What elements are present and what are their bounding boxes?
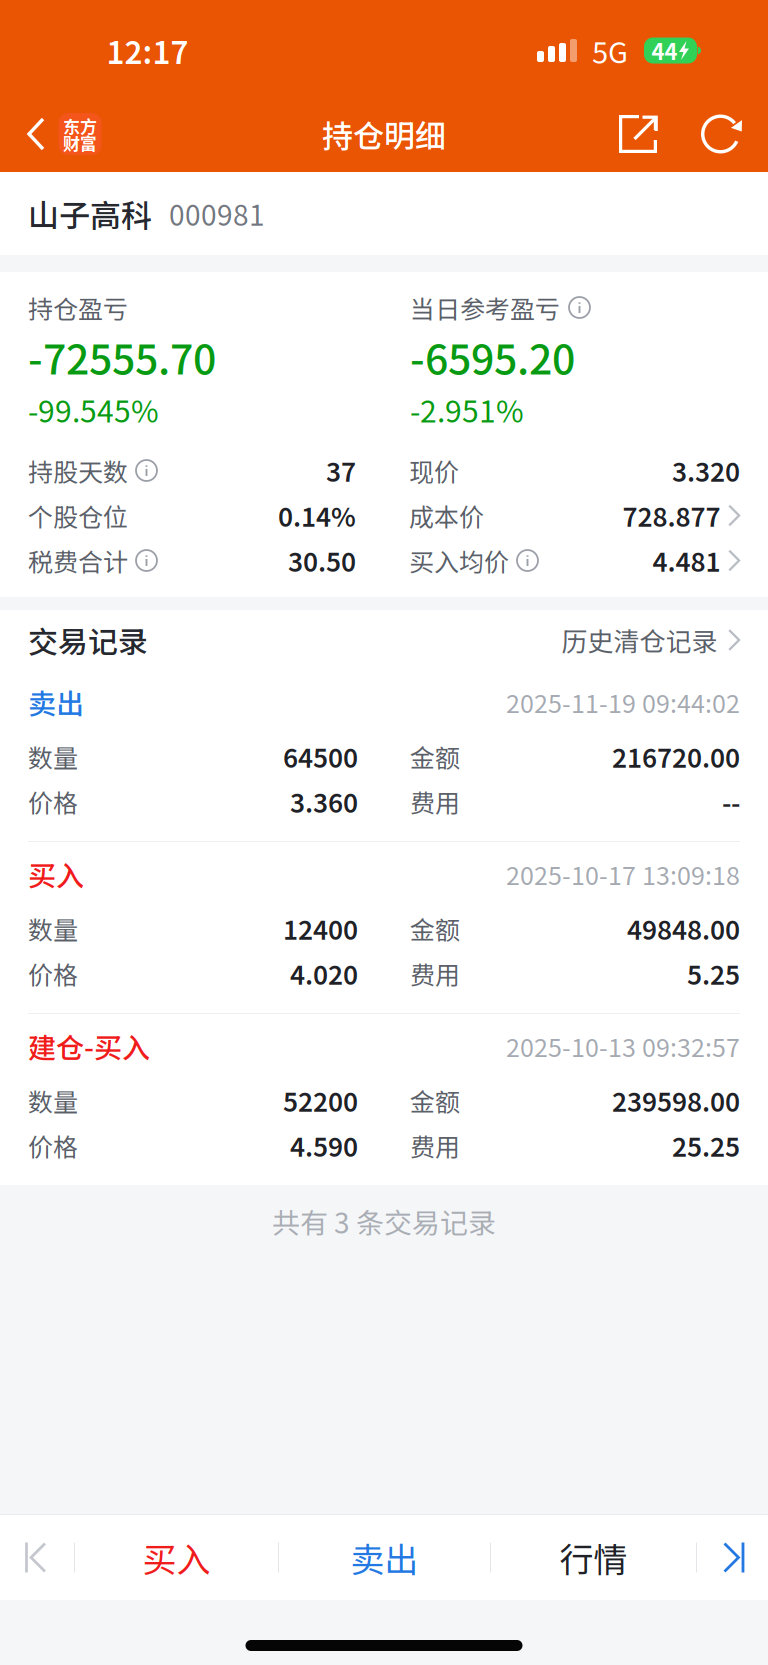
staticText: 卖出 — [28, 682, 84, 722]
staticText: 个股仓位 — [28, 497, 128, 534]
staticText: 费用 — [410, 955, 460, 992]
button[interactable]: 返回 — [0, 95, 113, 173]
button[interactable]: 下一条 — [697, 1515, 768, 1600]
staticText: 数量 — [28, 910, 78, 947]
staticText: 费用 — [410, 1127, 460, 1164]
staticText: -- — [722, 783, 740, 820]
button[interactable]: 行情 — [491, 1515, 696, 1600]
staticText: 金额 — [410, 910, 460, 947]
staticText: 2025-11-19 09:44:02 — [506, 684, 740, 720]
staticText: 12400 — [283, 910, 358, 947]
staticText: 买入 — [142, 1533, 210, 1582]
staticText: 49848.00 — [627, 910, 740, 947]
staticText: -72555.70 — [28, 327, 216, 386]
button[interactable]: 卖出 — [279, 1515, 490, 1600]
staticText: 历史清仓记录 — [562, 621, 718, 659]
staticText: 成本价 — [409, 497, 484, 534]
staticText: 4.020 — [290, 955, 358, 992]
staticText: 0.14% — [278, 497, 356, 534]
staticText: 金额 — [410, 1082, 460, 1119]
button[interactable]: 历史清仓记录 — [562, 621, 740, 659]
button[interactable]: 上一条 — [0, 1515, 74, 1600]
staticText: -6595.20 — [410, 327, 575, 386]
staticText: 现价 — [409, 452, 459, 489]
staticText: 2025-10-13 09:32:57 — [506, 1028, 740, 1064]
staticText: 卖出 — [350, 1533, 418, 1582]
staticText: -99.545% — [28, 388, 159, 431]
staticText: 37 — [326, 452, 356, 489]
staticText: 价格 — [28, 1127, 78, 1164]
staticText: 交易记录 — [28, 618, 148, 662]
staticText: 持股天数 — [28, 452, 128, 489]
staticText: 30.50 — [288, 542, 356, 579]
staticText: 行情 — [559, 1533, 627, 1582]
staticText: 财富 — [63, 130, 97, 155]
staticText: 价格 — [28, 955, 78, 992]
staticText: 4.481 — [653, 542, 721, 579]
staticText: -2.951% — [410, 388, 524, 431]
staticText: 44 — [651, 35, 677, 66]
staticText: 3.320 — [672, 452, 740, 489]
staticText: 税费合计 — [28, 542, 128, 579]
button[interactable]: 刷新 — [691, 101, 753, 167]
staticText: 239598.00 — [612, 1082, 740, 1119]
staticText: 当日参考盈亏 — [410, 289, 560, 326]
staticText: 金额 — [410, 738, 460, 775]
staticText: 买入 — [28, 854, 84, 894]
staticText: 000981 — [169, 193, 265, 234]
staticText: 5.25 — [687, 955, 740, 992]
staticText: 数量 — [28, 1082, 78, 1119]
staticText: 3.360 — [290, 783, 358, 820]
staticText: 728.877 — [623, 497, 721, 534]
staticText: 山子高科 — [28, 191, 152, 236]
staticText: 持仓盈亏 — [28, 289, 128, 326]
staticText: 共有 3 条交易记录 — [272, 1201, 496, 1241]
staticText: 2025-10-17 13:09:18 — [506, 856, 740, 892]
staticText: 25.25 — [672, 1127, 740, 1164]
staticText: 买入均价 — [409, 542, 509, 579]
staticText: 数量 — [28, 738, 78, 775]
button[interactable]: 分享 — [607, 101, 669, 167]
staticText: 费用 — [410, 783, 460, 820]
button[interactable]: 买入 — [75, 1515, 278, 1600]
staticText: 持仓明细 — [322, 112, 446, 156]
staticText: 5G — [592, 29, 628, 71]
staticText: 建仓-买入 — [28, 1026, 150, 1066]
staticText: 12:17 — [106, 28, 188, 73]
staticText: 52200 — [283, 1082, 358, 1119]
staticText: 东方 — [63, 113, 97, 138]
staticText: 216720.00 — [612, 738, 740, 775]
staticText: 4.590 — [290, 1127, 358, 1164]
staticText: 64500 — [283, 738, 358, 775]
staticText: 价格 — [28, 783, 78, 820]
